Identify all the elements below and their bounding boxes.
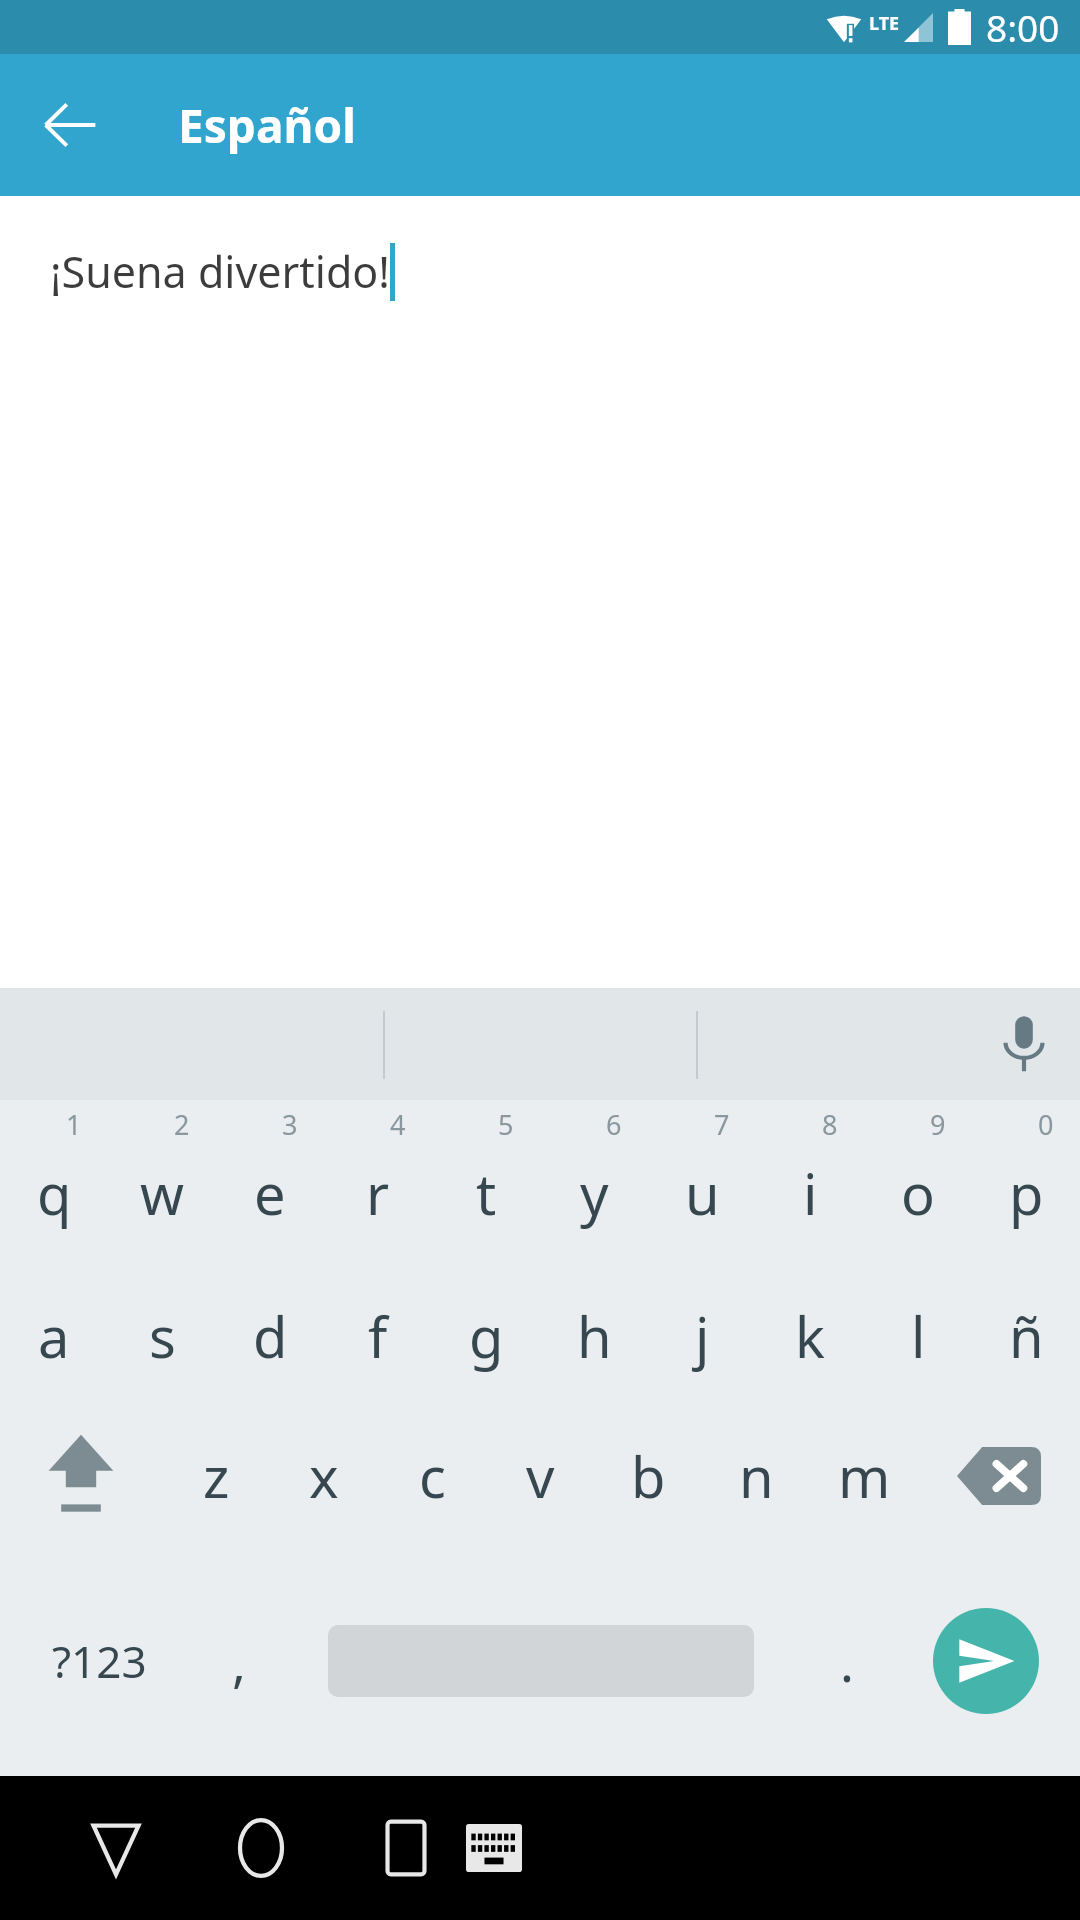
button[interactable]: . (802, 1546, 892, 1776)
staticText: r (366, 1155, 390, 1231)
staticText: ¡Suena divertido! (50, 242, 390, 301)
button[interactable]: 9 (864, 1100, 972, 1266)
button[interactable]: g (432, 1266, 540, 1406)
button[interactable]: 5 (432, 1100, 540, 1266)
staticText: e (254, 1155, 286, 1231)
button[interactable]: Change keyboard (440, 1794, 548, 1902)
staticText: 7 (714, 1106, 730, 1143)
staticText: , (232, 1626, 246, 1697)
staticText: a (38, 1298, 70, 1374)
staticText: 4 (390, 1106, 406, 1143)
staticText: 1 (66, 1106, 82, 1143)
button[interactable]: k (756, 1266, 864, 1406)
button[interactable]: 4 (324, 1100, 432, 1266)
staticText: 0 (1038, 1106, 1054, 1143)
button[interactable]: a (0, 1266, 108, 1406)
staticText: ?123 (52, 1631, 147, 1691)
button[interactable]: Recents (352, 1794, 460, 1902)
button[interactable]: d (216, 1266, 324, 1406)
staticText: x (309, 1438, 339, 1514)
staticText: 3 (282, 1106, 298, 1143)
staticText: 6 (606, 1106, 622, 1143)
staticText: m (838, 1438, 891, 1514)
button[interactable]: Send (892, 1546, 1080, 1776)
button[interactable]: 8 (756, 1100, 864, 1266)
staticText: s (149, 1298, 176, 1374)
button[interactable]: 3 (216, 1100, 324, 1266)
staticText: v (526, 1438, 555, 1514)
staticText: Español (178, 94, 356, 157)
button[interactable]: z (162, 1406, 270, 1546)
staticText: 5 (498, 1106, 514, 1143)
button[interactable]: 2 (108, 1100, 216, 1266)
button[interactable]: v (486, 1406, 594, 1546)
staticText: LTE (869, 11, 900, 36)
button[interactable]: h (540, 1266, 648, 1406)
staticText: c (419, 1438, 446, 1514)
button[interactable]: l (864, 1266, 972, 1406)
staticText: ñ (1009, 1298, 1044, 1374)
button[interactable]: Voice input (974, 994, 1074, 1094)
button[interactable]: f (324, 1266, 432, 1406)
staticText: i (803, 1155, 818, 1231)
staticText: w (140, 1155, 185, 1231)
staticText: d (253, 1298, 288, 1374)
staticText: 8 (822, 1106, 838, 1143)
staticText: l (911, 1298, 926, 1374)
button[interactable]: , (198, 1546, 280, 1776)
button[interactable]: 1 (0, 1100, 108, 1266)
staticText: g (469, 1298, 504, 1374)
button[interactable]: Backspace (918, 1406, 1080, 1546)
button[interactable]: 6 (540, 1100, 648, 1266)
staticText: j (695, 1298, 710, 1374)
button[interactable]: 0 (972, 1100, 1080, 1266)
staticText: u (685, 1155, 720, 1231)
button[interactable]: 7 (648, 1100, 756, 1266)
staticText: z (203, 1438, 230, 1514)
staticText: y (580, 1155, 609, 1231)
button[interactable]: c (378, 1406, 486, 1546)
button[interactable]: j (648, 1266, 756, 1406)
staticText: f (368, 1298, 388, 1374)
staticText: . (840, 1626, 854, 1697)
button[interactable]: ?123 (0, 1546, 198, 1776)
staticText: k (795, 1298, 825, 1374)
button[interactable]: Navigate up (24, 79, 116, 171)
staticText: 2 (174, 1106, 190, 1143)
button[interactable]: x (270, 1406, 378, 1546)
staticText: o (901, 1155, 935, 1231)
staticText: b (631, 1438, 666, 1514)
staticText: 8:00 (986, 2, 1060, 52)
staticText: h (577, 1298, 612, 1374)
staticText: n (739, 1438, 774, 1514)
button[interactable]: b (594, 1406, 702, 1546)
staticText: p (1009, 1155, 1044, 1231)
button[interactable]: m (810, 1406, 918, 1546)
staticText: t (476, 1155, 497, 1231)
staticText: 9 (930, 1106, 946, 1143)
button[interactable]: Space (280, 1546, 802, 1776)
button[interactable]: Back (62, 1794, 170, 1902)
button[interactable]: Home (207, 1794, 315, 1902)
button[interactable]: s (108, 1266, 216, 1406)
button[interactable]: ñ (972, 1266, 1080, 1406)
staticText: q (37, 1155, 72, 1231)
button[interactable]: Shift (0, 1406, 162, 1546)
button[interactable]: n (702, 1406, 810, 1546)
